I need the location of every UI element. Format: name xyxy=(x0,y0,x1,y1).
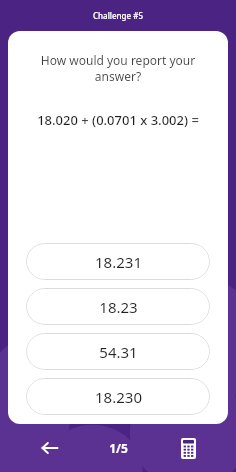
button[interactable]: 18.23 xyxy=(26,288,210,325)
staticText: 18.230 xyxy=(95,387,142,407)
button[interactable]: 18.231 xyxy=(26,243,210,280)
staticText: How would you report your answer? xyxy=(28,52,208,85)
button[interactable]: Back xyxy=(34,432,66,464)
button[interactable]: Calculator xyxy=(172,432,204,464)
staticText: 18.231 xyxy=(95,252,142,272)
button[interactable]: 18.230 xyxy=(26,378,210,415)
button[interactable]: 54.31 xyxy=(26,333,210,370)
staticText: 1/5 xyxy=(109,440,128,456)
staticText: 18.020 + (0.0701 x 3.002) = xyxy=(37,111,199,129)
staticText: Challenge #5 xyxy=(93,10,143,21)
staticText: 54.31 xyxy=(99,342,138,362)
staticText: 18.23 xyxy=(99,297,138,317)
